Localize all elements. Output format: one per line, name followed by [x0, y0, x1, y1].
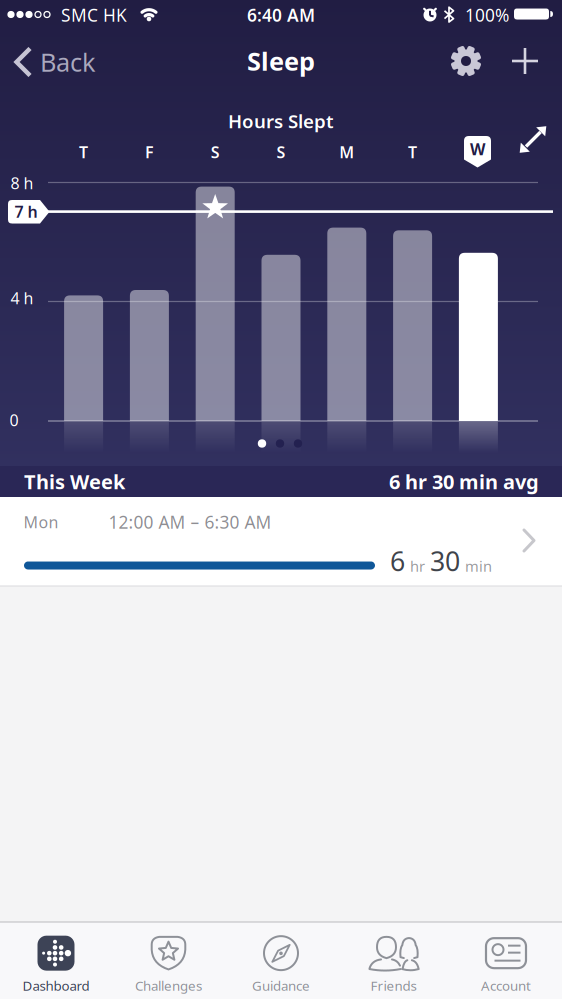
staticText: F: [145, 141, 154, 163]
staticText: T: [408, 141, 417, 163]
staticText: This Week: [24, 468, 125, 495]
staticText: Account: [481, 977, 531, 994]
staticText: Back: [40, 45, 96, 79]
button[interactable]: Guidance: [252, 936, 310, 994]
staticText: SMC HK: [61, 3, 127, 26]
button[interactable]: Dashboard: [22, 936, 89, 994]
button[interactable]: Add: [511, 47, 539, 75]
staticText: W: [470, 138, 485, 160]
button[interactable]: Challenges: [135, 936, 202, 994]
staticText: 0: [9, 409, 18, 431]
staticText: 6: [390, 543, 405, 579]
staticText: 6 hr 30 min avg: [389, 468, 539, 495]
staticText: 7 h: [14, 201, 37, 222]
staticText: T: [79, 141, 88, 163]
staticText: S: [276, 141, 285, 163]
staticText: min: [465, 556, 492, 576]
staticText: Challenges: [135, 977, 202, 994]
button[interactable]: Friends: [367, 936, 419, 994]
staticText: Guidance: [252, 977, 310, 994]
staticText: Mon: [23, 511, 58, 533]
staticText: M: [339, 141, 354, 163]
staticText: 8 h: [10, 172, 33, 194]
button[interactable]: Back: [14, 40, 96, 84]
button[interactable]: Mon: [0, 497, 562, 586]
staticText: 30: [430, 543, 460, 579]
staticText: 6:40 AM: [247, 3, 315, 26]
staticText: 12:00 AM – 6:30 AM: [108, 510, 271, 533]
staticText: Sleep: [247, 44, 315, 78]
staticText: S: [211, 141, 220, 163]
staticText: 4 h: [10, 287, 33, 309]
staticText: Hours Slept: [228, 109, 334, 133]
staticText: hr: [410, 556, 425, 576]
button[interactable]: Account: [481, 936, 531, 994]
staticText: 100%: [465, 3, 509, 26]
staticText: Friends: [370, 977, 416, 994]
button[interactable]: Settings: [450, 45, 482, 77]
staticText: Dashboard: [22, 977, 89, 994]
